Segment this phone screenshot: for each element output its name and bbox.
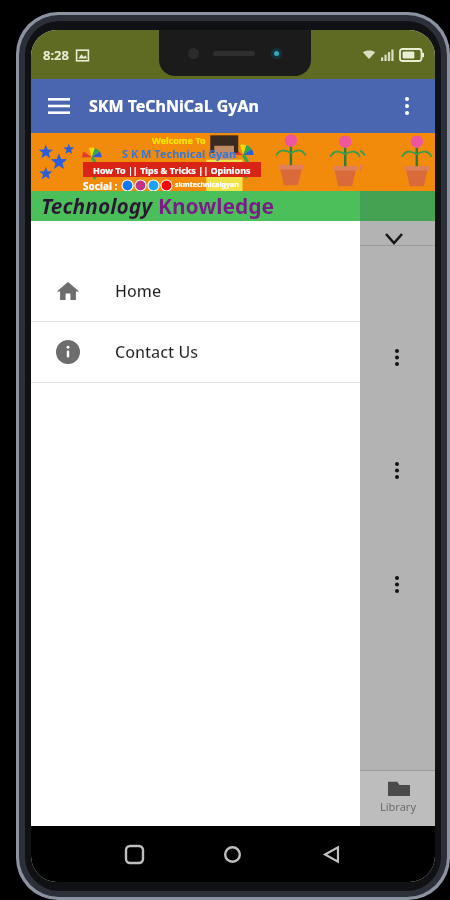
staticText: Contact Us — [115, 341, 198, 363]
staticText: Social : — [83, 179, 118, 191]
staticText: Social : — [83, 179, 118, 191]
staticText: 8:28 — [43, 46, 69, 64]
button[interactable]: Home — [183, 832, 282, 876]
button[interactable]: Library — [380, 779, 417, 814]
staticText: Welcome To — [152, 134, 206, 146]
button[interactable]: Item options — [381, 341, 413, 373]
button[interactable]: More options — [385, 84, 429, 128]
staticText: skmtechnicalgyan — [175, 180, 239, 190]
staticText: SKM TeChNiCaL GyAn — [89, 95, 259, 117]
button[interactable]: Item options — [381, 454, 413, 486]
button[interactable]: Recent apps — [85, 832, 183, 876]
staticText: S K M Technical Gyan — [122, 146, 237, 161]
staticText: How To || Tips & Tricks || Opinions — [93, 164, 251, 176]
staticText: Technology — [41, 192, 158, 221]
button[interactable]: Item options — [381, 568, 413, 600]
button[interactable]: Back — [282, 832, 381, 876]
button[interactable]: Home — [31, 261, 360, 321]
staticText: Knowledge — [158, 192, 275, 221]
staticText: How To || Tips & Tricks || Opinions — [93, 164, 251, 176]
staticText: Technology — [41, 192, 158, 221]
staticText: Knowledge — [158, 192, 275, 221]
button[interactable]: Open navigation drawer — [37, 84, 81, 128]
button[interactable]: Contact Us — [31, 322, 360, 382]
staticText: Home — [115, 280, 162, 302]
staticText: Welcome To — [152, 134, 206, 146]
staticText: S K M Technical Gyan — [122, 146, 237, 161]
button[interactable]: Expand — [379, 223, 409, 253]
staticText: skmtechnicalgyan — [175, 180, 239, 190]
staticText: Library — [380, 799, 417, 814]
